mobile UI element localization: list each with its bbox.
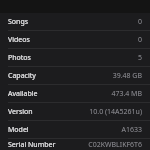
staticText: 39.48 GB — [112, 71, 142, 81]
staticText: A1633 — [121, 125, 142, 135]
button[interactable]: Version — [0, 103, 150, 120]
button[interactable]: Capacity — [0, 67, 150, 84]
staticText: Videos — [8, 35, 30, 45]
staticText: 0 — [137, 17, 142, 27]
button[interactable]: Songs — [0, 13, 150, 30]
staticText: Capacity — [8, 71, 36, 81]
staticText: Version — [8, 107, 33, 117]
staticText: Serial Number — [8, 140, 56, 150]
staticText: 10.0 (14A5261u) — [89, 107, 142, 117]
staticText: Songs — [8, 17, 29, 27]
button[interactable]: Videos — [0, 31, 150, 48]
staticText: 5 — [137, 53, 142, 63]
staticText: C02KWBLIKF6T6 — [88, 140, 142, 150]
button[interactable]: Model — [0, 121, 150, 138]
button[interactable]: Serial Number — [0, 139, 150, 150]
staticText: Available — [8, 89, 38, 99]
staticText: Model — [8, 125, 29, 135]
button[interactable]: Available — [0, 85, 150, 102]
button[interactable]: Photos — [0, 49, 150, 66]
staticText: Photos — [8, 53, 31, 63]
staticText: 473.4 MB — [111, 89, 142, 99]
staticText: 0 — [137, 35, 142, 45]
